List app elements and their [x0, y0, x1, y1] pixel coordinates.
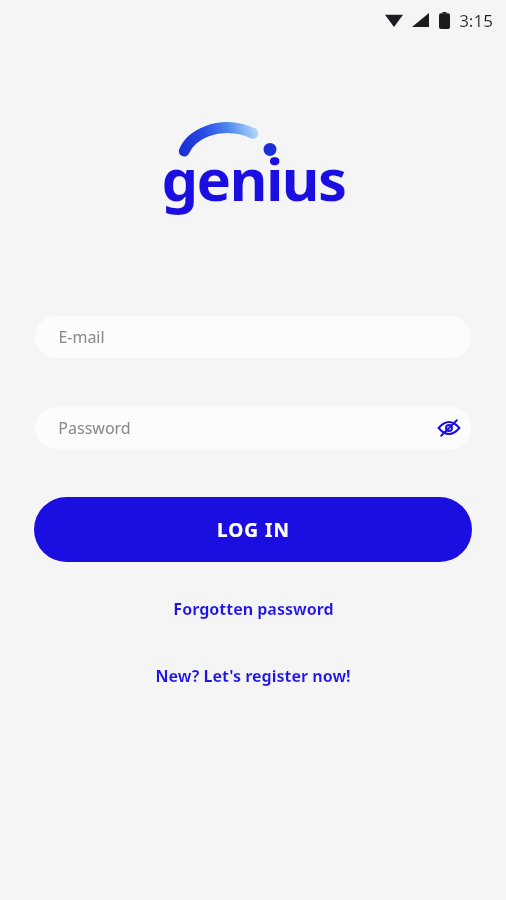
- staticText: New? Let's register now!: [155, 665, 351, 687]
- button[interactable]: LOG IN: [34, 497, 472, 562]
- staticText: Password: [58, 417, 131, 439]
- staticText: LOG IN: [217, 517, 290, 543]
- button[interactable]: New? Let's register now!: [0, 657, 506, 695]
- button[interactable]: Password: [35, 407, 471, 449]
- button[interactable]: Forgotten password: [0, 590, 506, 628]
- button[interactable]: E-mail: [35, 316, 471, 358]
- staticText: genius: [161, 139, 346, 218]
- staticText: E-mail: [58, 326, 105, 348]
- staticText: Forgotten password: [173, 598, 334, 620]
- staticText: 3:15: [459, 9, 493, 32]
- button[interactable]: Show password: [427, 407, 471, 449]
